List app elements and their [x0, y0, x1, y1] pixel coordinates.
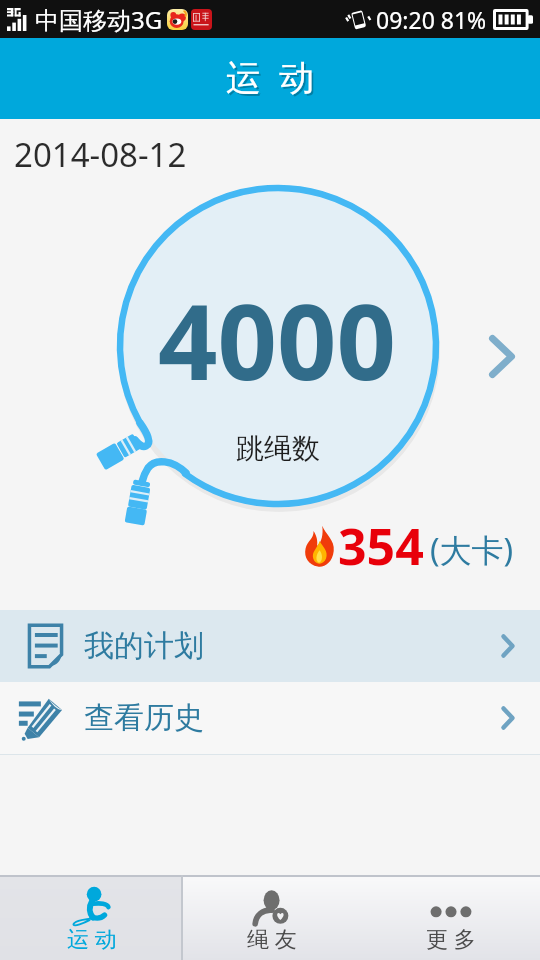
button[interactable]: 绳 友 [183, 875, 361, 960]
staticText: 运 动 [67, 923, 117, 953]
staticText: 中国移动3G [35, 3, 163, 36]
staticText: 2014-08-12 [14, 132, 187, 177]
staticText: 更 多 [426, 923, 476, 953]
button[interactable]: Next day [482, 327, 522, 385]
staticText: 运 动 [226, 53, 315, 101]
staticText: 查看历史 [84, 699, 204, 737]
button[interactable]: 跳绳数 4000 [120, 188, 436, 504]
button[interactable]: 查看历史 [0, 682, 540, 754]
staticText: 354 [338, 512, 424, 580]
staticText: 4000 [158, 269, 396, 411]
staticText: 运 动 [228, 55, 317, 103]
button[interactable]: 运 动 [0, 875, 183, 960]
staticText: 09:20 81% [376, 4, 487, 35]
staticText: 跳绳数 [236, 431, 320, 466]
staticText: 我的计划 [84, 627, 204, 665]
button[interactable]: 更 多 [361, 875, 540, 960]
button[interactable]: 我的计划 [0, 610, 540, 682]
staticText: 绳 友 [247, 923, 297, 953]
staticText: (大卡) [430, 528, 514, 572]
